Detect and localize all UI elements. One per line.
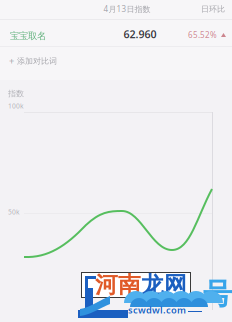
staticText: 100k — [8, 102, 24, 110]
staticText: 指数 — [8, 89, 24, 98]
staticText: 50k — [8, 208, 20, 216]
button[interactable]: 宝宝取名 — [10, 29, 56, 43]
staticText: 宝宝取名 — [10, 30, 46, 42]
staticText: 62.960 — [123, 27, 156, 41]
staticText: + — [9, 55, 14, 67]
staticText: 河南 — [95, 271, 141, 299]
staticText: 4月13日指数 — [103, 4, 150, 14]
staticText: 65.52% — [188, 30, 217, 40]
staticText: 日环比 — [201, 4, 225, 14]
staticText: 龙网 — [141, 271, 187, 299]
staticText: 添加对比词 — [17, 56, 57, 66]
button[interactable]: + — [9, 53, 99, 69]
staticText: scwdwl.com — [128, 304, 186, 316]
staticText: 号 — [203, 276, 232, 312]
